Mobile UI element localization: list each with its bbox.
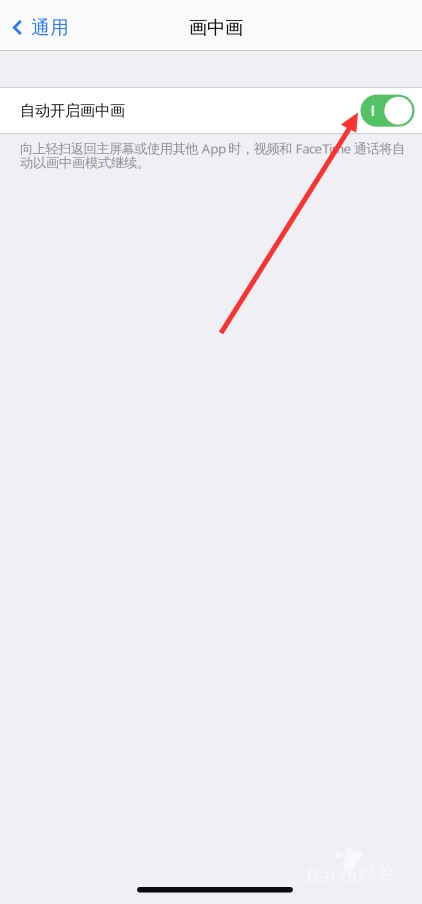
staticText: du [340, 861, 364, 888]
button[interactable]: 自动开启画中画 [0, 88, 422, 133]
staticText: 画中画 [189, 16, 243, 39]
staticText: 向上轻扫返回主屏幕或使用其他 App 时，视频和 FaceTime 通话将自 [20, 139, 405, 157]
staticText: 通用 [31, 16, 69, 39]
staticText: 经验 [359, 861, 395, 884]
staticText: Bai [306, 861, 335, 888]
staticText: 自动开启画中画 [20, 101, 125, 120]
staticText: 动以画中画模式继续。 [20, 154, 150, 171]
button[interactable]: 通用 [0, 0, 81, 50]
